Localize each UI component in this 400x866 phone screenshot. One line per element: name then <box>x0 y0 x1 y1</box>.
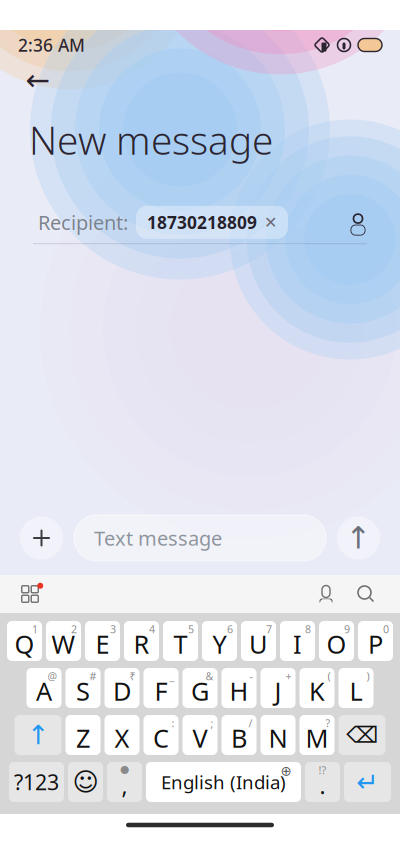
staticText: F <box>154 674 167 708</box>
button[interactable]: 6 <box>202 621 237 661</box>
staticText: 7 <box>266 622 272 636</box>
staticText: W <box>51 627 75 661</box>
staticText: V <box>192 721 207 755</box>
staticText: ↑ <box>27 720 49 750</box>
button[interactable]: : <box>143 715 178 755</box>
button[interactable]: Voice input <box>306 575 346 613</box>
button[interactable]: _ <box>143 668 178 708</box>
staticText: B <box>231 721 247 755</box>
button[interactable]: Emoji <box>68 762 103 802</box>
button[interactable]: 18730218809 <box>136 206 288 239</box>
button[interactable]: ; <box>182 715 217 755</box>
staticText: ? <box>325 716 330 730</box>
staticText: New message <box>29 114 273 165</box>
staticText: : <box>171 716 174 730</box>
button[interactable]: 4 <box>124 621 159 661</box>
staticText: ← <box>25 63 50 97</box>
staticText: ⊕ <box>280 763 291 779</box>
staticText: Text message <box>94 525 222 551</box>
staticText: L <box>349 674 362 708</box>
button[interactable]: 7 <box>241 621 276 661</box>
button[interactable]: Comma <box>107 762 142 802</box>
staticText: Recipient: <box>38 209 128 236</box>
button[interactable]: Enter <box>344 762 391 802</box>
button[interactable]: ? <box>299 715 334 755</box>
staticText: Y <box>212 627 226 661</box>
staticText: ₹ <box>129 669 135 683</box>
staticText: 6 <box>227 622 233 636</box>
staticText: 3 <box>110 622 116 636</box>
button[interactable] <box>104 715 139 755</box>
button[interactable]: 0 <box>358 621 393 661</box>
button[interactable]: 9 <box>319 621 354 661</box>
staticText: C <box>153 721 169 755</box>
staticText: ↵ <box>356 767 378 797</box>
button[interactable]: Text message <box>74 515 326 561</box>
staticText: A <box>36 674 52 708</box>
staticText: ?123 <box>14 768 59 796</box>
staticText: ● <box>120 763 129 775</box>
staticText: O <box>326 627 346 661</box>
button[interactable]: Choose contact <box>338 202 378 242</box>
staticText: R <box>133 627 149 661</box>
button[interactable]: # <box>65 668 100 708</box>
staticText: Q <box>14 627 34 661</box>
button[interactable]: ( <box>299 668 334 708</box>
staticText: @ <box>47 669 57 683</box>
button[interactable]: ?123 <box>9 762 64 802</box>
button[interactable]: ⊕ <box>146 762 301 802</box>
staticText: S <box>76 674 90 708</box>
staticText: ☺ <box>72 768 98 796</box>
button[interactable]: Add attachment <box>20 516 63 559</box>
staticText: # <box>89 669 96 683</box>
button[interactable]: Shift <box>14 715 61 755</box>
staticText: P <box>368 627 383 661</box>
staticText: 2 <box>71 622 77 636</box>
button[interactable]: 5 <box>163 621 198 661</box>
staticText: !? <box>318 763 326 777</box>
button[interactable]: 2 <box>46 621 81 661</box>
staticText: H <box>229 674 248 708</box>
staticText: Z <box>76 721 90 755</box>
staticText: 8 <box>305 622 311 636</box>
staticText: - <box>249 669 252 683</box>
staticText: 0 <box>383 622 389 636</box>
button[interactable]: Send <box>337 516 380 559</box>
staticText: / <box>248 716 252 730</box>
staticText: N <box>268 721 287 755</box>
button[interactable]: 3 <box>85 621 120 661</box>
staticText: G <box>191 674 209 708</box>
button[interactable]: Period <box>305 762 340 802</box>
staticText: K <box>309 674 325 708</box>
staticText: . <box>319 770 325 800</box>
staticText: D <box>113 674 131 708</box>
staticText: 18730218809 <box>147 211 257 234</box>
staticText: ↑ <box>345 521 371 555</box>
staticText: ; <box>210 716 213 730</box>
button[interactable]: + <box>260 668 295 708</box>
staticText: 9 <box>344 622 350 636</box>
staticText: English (India) <box>161 770 286 794</box>
button[interactable]: 8 <box>280 621 315 661</box>
staticText: I <box>293 627 302 661</box>
button[interactable]: Search <box>346 575 386 613</box>
button[interactable]: & <box>182 668 217 708</box>
button[interactable]: Backspace <box>338 715 385 755</box>
staticText: U <box>249 627 268 661</box>
button[interactable] <box>65 715 100 755</box>
button[interactable]: ₹ <box>104 668 139 708</box>
staticText: T <box>173 627 187 661</box>
button[interactable]: Keyboard features <box>8 575 52 613</box>
staticText: + <box>285 669 291 683</box>
button[interactable] <box>260 715 295 755</box>
button[interactable]: 1 <box>7 621 42 661</box>
button[interactable]: / <box>221 715 256 755</box>
staticText: M <box>305 721 328 755</box>
button[interactable]: @ <box>26 668 61 708</box>
staticText: & <box>205 669 213 683</box>
staticText: ( <box>327 669 330 683</box>
button[interactable]: ) <box>338 668 373 708</box>
button[interactable]: - <box>221 668 256 708</box>
button[interactable]: Back <box>16 60 60 100</box>
staticText: _ <box>169 669 174 683</box>
